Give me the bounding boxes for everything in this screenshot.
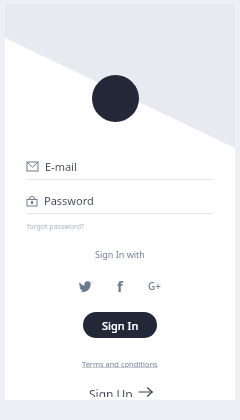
button[interactable]: Terms and conditions: [79, 356, 161, 372]
staticText: Terms and conditions: [82, 359, 158, 369]
button[interactable]: Sign in with Twitter: [74, 274, 98, 298]
staticText: forgot password?: [27, 222, 85, 232]
other: Profile avatar: [92, 75, 139, 122]
staticText: Sign In: [102, 318, 139, 333]
button[interactable]: Password: [27, 193, 212, 214]
staticText: G+: [148, 279, 161, 293]
staticText: Sign Up: [89, 386, 133, 397]
button[interactable]: Sign in with Google Plus: [142, 274, 166, 298]
staticText: Sign In with: [95, 248, 145, 260]
button[interactable]: Sign in with Facebook: [108, 274, 132, 298]
button[interactable]: E-mail: [27, 159, 212, 180]
button[interactable]: Sign Up: [83, 383, 158, 400]
staticText: f: [117, 276, 123, 296]
button[interactable]: forgot password?: [27, 220, 85, 234]
staticText: Password: [44, 193, 94, 208]
button[interactable]: Sign In: [83, 312, 157, 338]
staticText: E-mail: [45, 159, 77, 174]
